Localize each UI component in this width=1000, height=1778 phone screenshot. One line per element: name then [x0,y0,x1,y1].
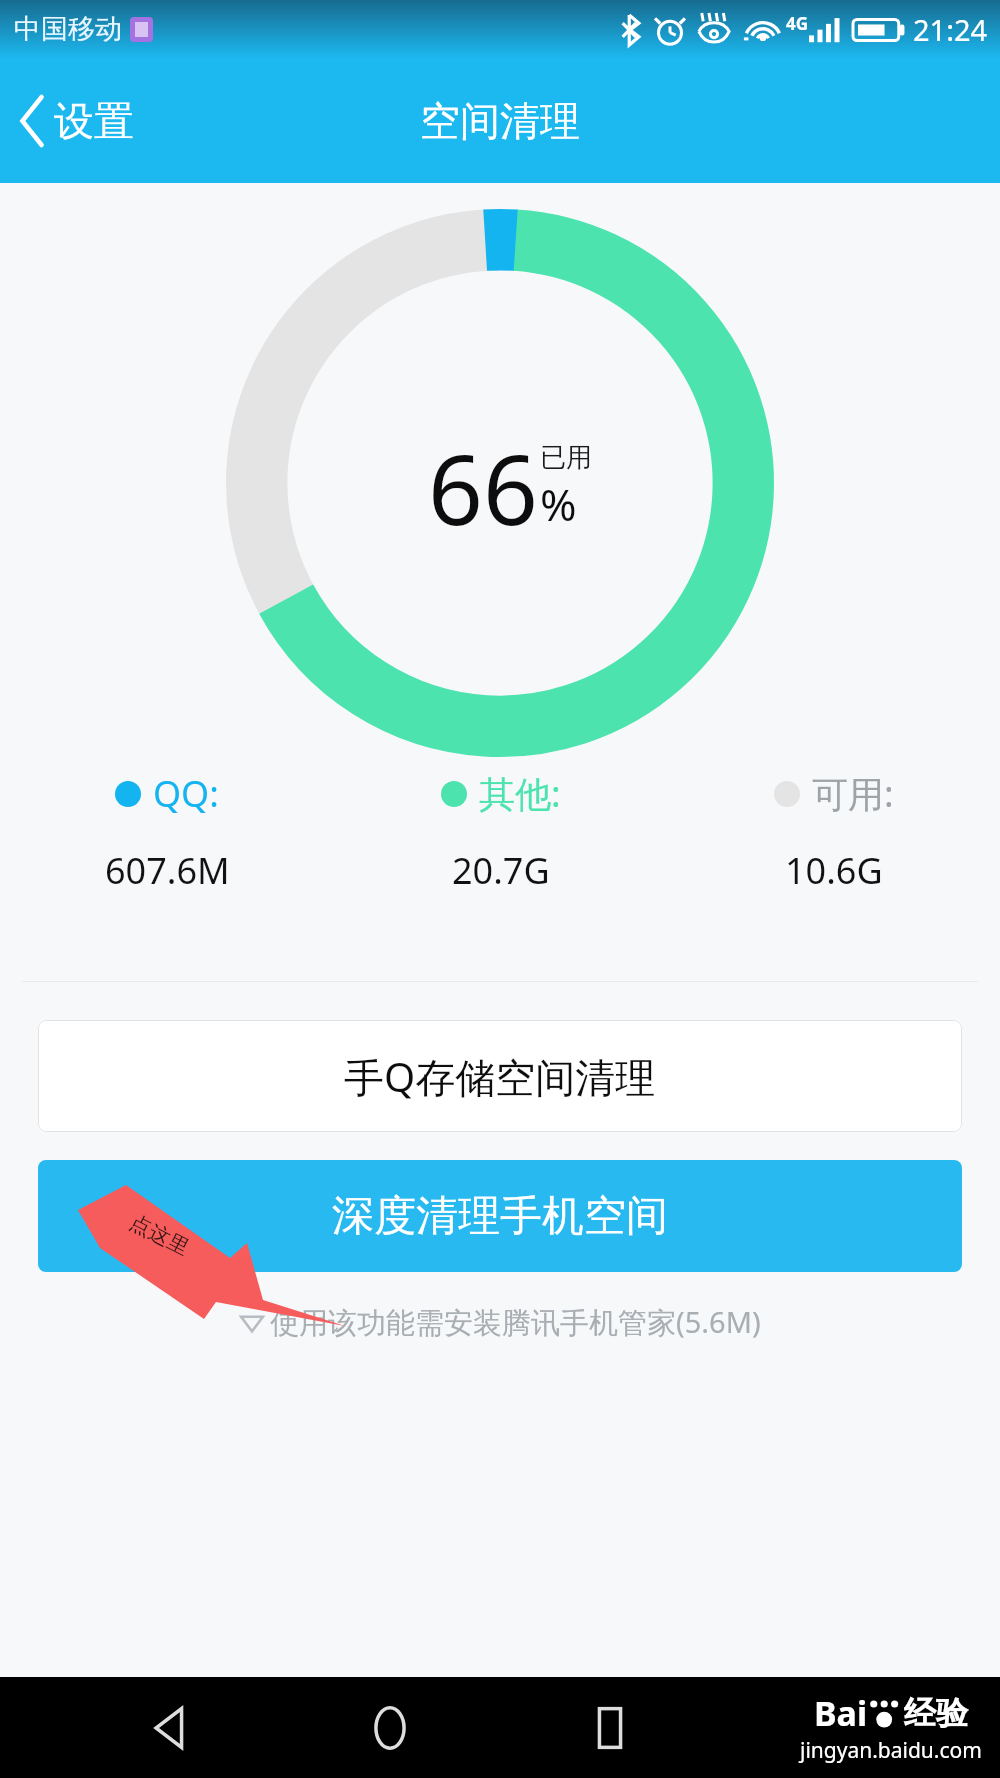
staticText: 空间清理 [420,96,580,146]
button[interactable]: 深度清理手机空间 [38,1160,962,1272]
staticText: 深度清理手机空间 [332,1190,668,1243]
button[interactable]: Recents [561,1679,659,1777]
staticText: 手Q存储空间清理 [344,1049,656,1104]
staticText: % [540,474,577,534]
staticText: 21:24 [913,10,988,49]
staticText: 使用该功能需安装腾讯手机管家(5.6M) [270,1302,761,1342]
staticText: Bai [814,1690,868,1736]
staticText: 10.6G [785,846,883,895]
staticText: 经验 [904,1693,968,1733]
button[interactable]: Home [341,1679,439,1777]
staticText: jingyan.baidu.com [800,1736,982,1765]
staticText: 4G [786,12,809,35]
button[interactable]: 手Q存储空间清理 [38,1020,962,1132]
staticText: 中国移动 [14,12,122,46]
staticText: 607.6M [105,846,230,895]
staticText: 已用 [540,441,592,474]
staticText: 设置 [54,96,134,146]
staticText: 可用: [812,769,894,818]
staticText: 66 [428,422,538,553]
button[interactable]: 设置 [0,80,156,162]
staticText: QQ: [153,769,219,818]
button[interactable]: Back [122,1679,220,1777]
staticText: 点这里 [125,1209,193,1261]
staticText: 其他: [479,769,561,818]
staticText: 20.7G [452,846,550,895]
